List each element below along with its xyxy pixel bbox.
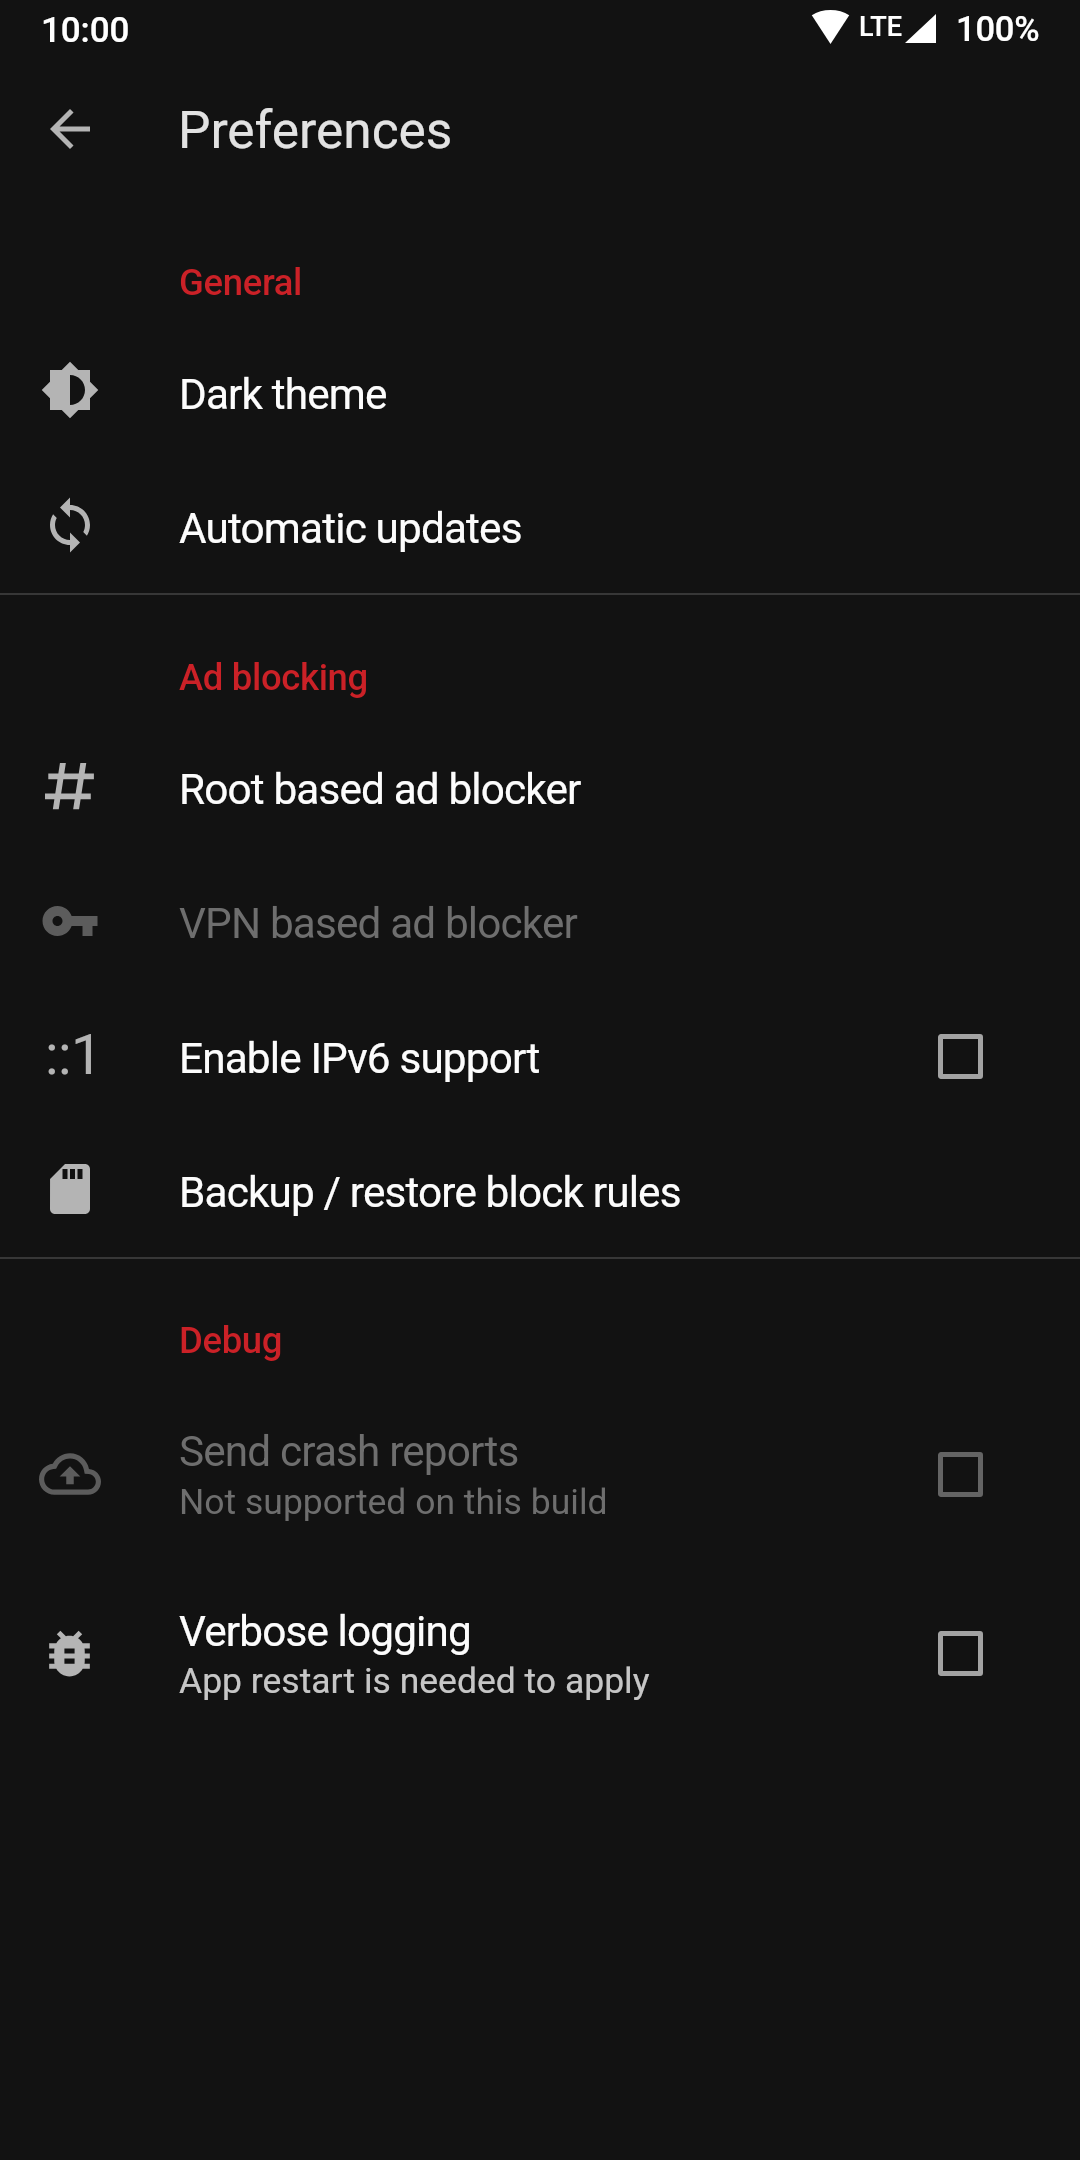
button[interactable]: Automatic updates <box>0 461 1080 595</box>
button[interactable]: Send crash reports <box>0 1386 1080 1566</box>
button[interactable]: Back <box>13 72 126 185</box>
staticText: 10:00 <box>41 10 130 51</box>
staticText: 100% <box>956 9 1040 49</box>
button[interactable]: Dark theme <box>0 327 1080 461</box>
staticText: Enable IPv6 support <box>179 1034 540 1084</box>
staticText: App restart is needed to apply <box>179 1660 650 1702</box>
button[interactable]: VPN based ad blocker <box>0 857 1080 991</box>
button[interactable]: Verbose logging <box>916 1609 1005 1698</box>
staticText: ::1 <box>45 1022 102 1088</box>
staticText: Root based ad blocker <box>179 765 581 815</box>
staticText: Preferences <box>178 100 453 160</box>
button[interactable]: Enable IPv6 support <box>916 1012 1005 1101</box>
button[interactable]: Root based ad blocker <box>0 723 1080 857</box>
staticText: Not supported on this build <box>179 1481 608 1523</box>
button[interactable]: ::1 <box>0 991 1080 1125</box>
staticText: Send crash reports <box>179 1427 519 1477</box>
staticText: Automatic updates <box>179 504 522 554</box>
button[interactable]: Backup / restore block rules <box>0 1125 1080 1259</box>
staticText: General <box>179 261 303 304</box>
button[interactable]: Verbose logging <box>0 1566 1080 1746</box>
staticText: LTE <box>859 11 903 43</box>
staticText: Debug <box>179 1319 283 1362</box>
staticText: VPN based ad blocker <box>179 899 578 949</box>
staticText: Dark theme <box>179 370 387 420</box>
staticText: Verbose logging <box>179 1607 471 1657</box>
staticText: Backup / restore block rules <box>179 1168 681 1218</box>
staticText: Ad blocking <box>179 656 368 699</box>
button[interactable]: Send crash reports <box>916 1430 1005 1519</box>
